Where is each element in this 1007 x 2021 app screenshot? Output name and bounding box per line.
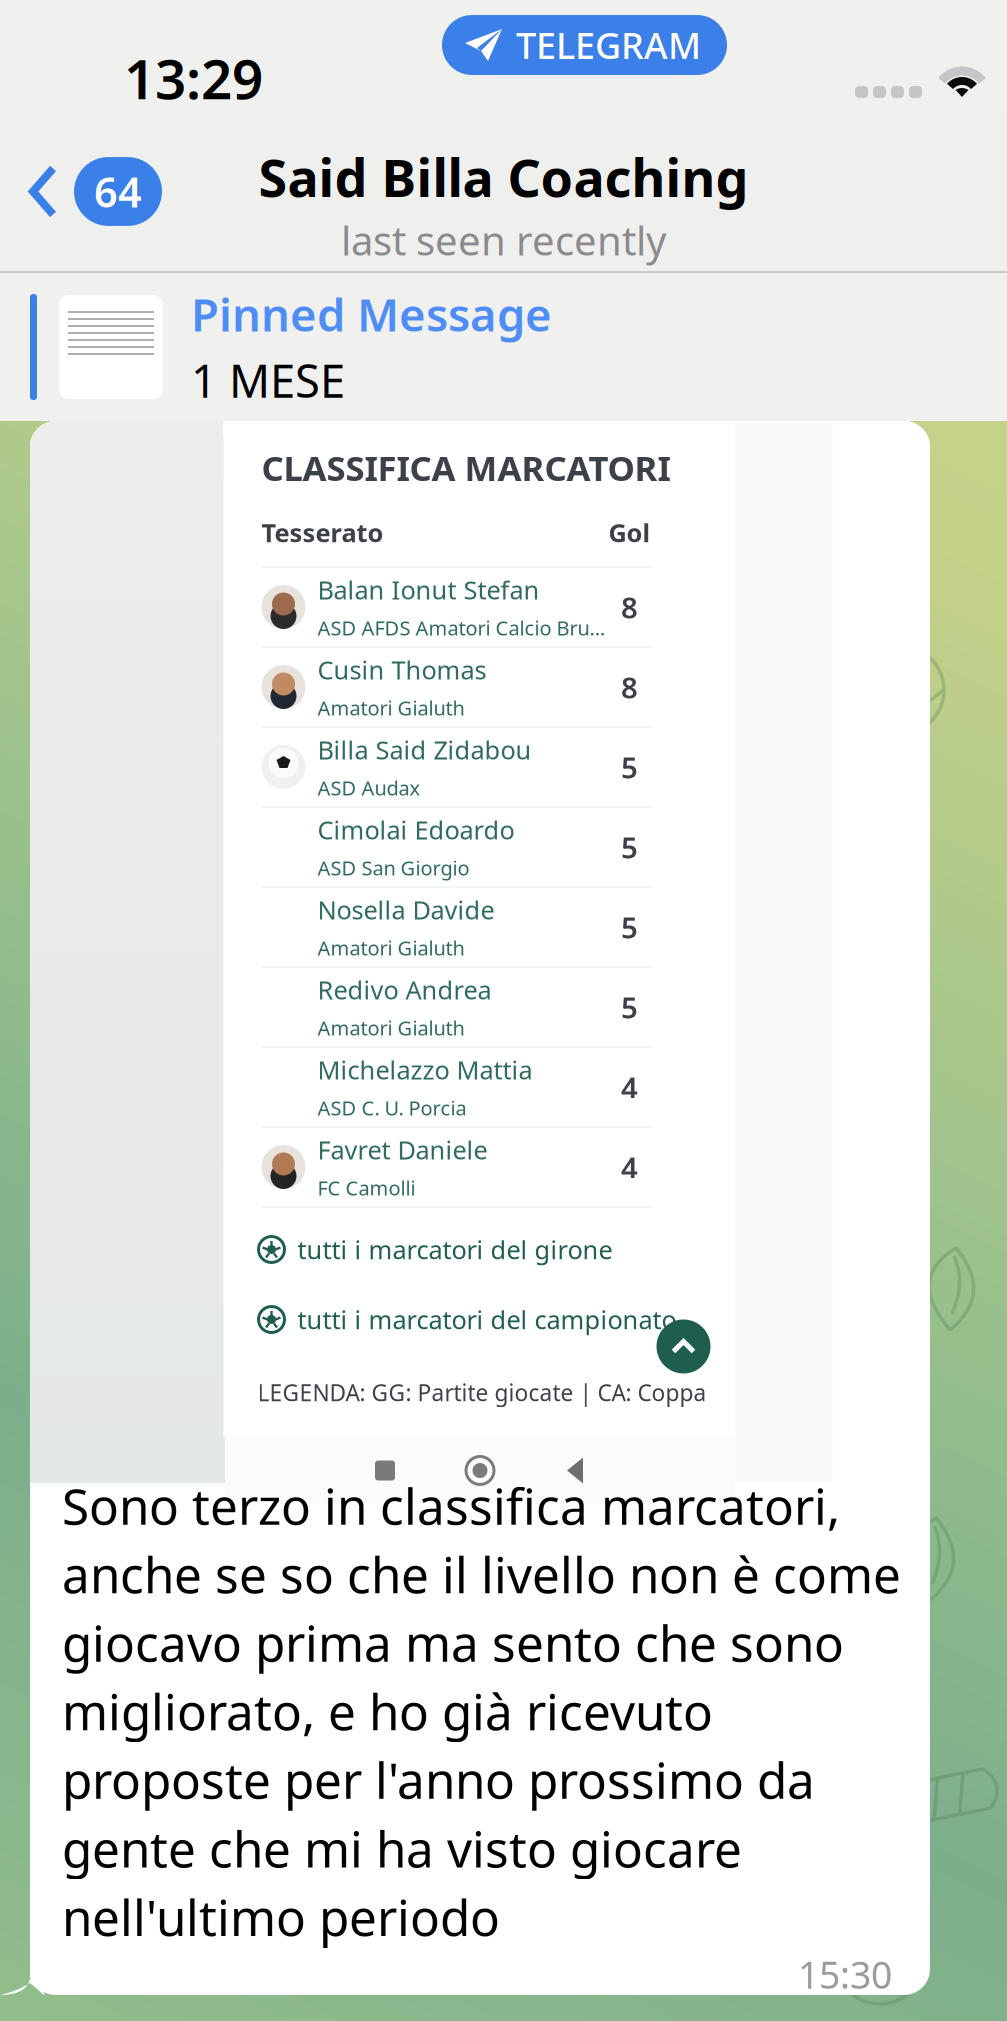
staticText: ASD C. U. Porcia (317, 1094, 466, 1121)
staticText: 13:29 (124, 42, 263, 114)
staticText: Cimolai Edoardo (317, 813, 514, 846)
staticText: 5 (621, 747, 638, 786)
staticText: ASD Audax (317, 774, 420, 801)
staticText: Cusin Thomas (317, 653, 486, 686)
staticText: tutti i marcatori del girone (297, 1233, 612, 1266)
button[interactable]: 64 (0, 137, 162, 246)
staticText: 4 (621, 1147, 638, 1186)
staticText: last seen recently (341, 213, 666, 267)
staticText: 8 (621, 667, 638, 706)
staticText: 64 (94, 164, 142, 219)
staticText: Pinned Message (191, 284, 552, 344)
staticText: Amatori Gialuth (317, 1014, 464, 1041)
staticText: Said Billa Coaching (258, 142, 748, 211)
staticText: ASD AFDS Amatori Calcio Brug… (317, 614, 607, 641)
staticText: 15:30 (798, 1949, 892, 1999)
button[interactable]: Pinned Message (0, 273, 1007, 421)
staticText: TELEGRAM (516, 21, 701, 69)
staticText: Billa Said Zidabou (317, 733, 531, 766)
staticText: 4 (621, 1067, 638, 1106)
staticText: Redivo Andrea (317, 973, 491, 1006)
staticText: Balan Ionut Stefan (317, 573, 539, 606)
staticText: 5 (621, 827, 638, 866)
staticText: CLASSIFICA MARCATORI (261, 444, 670, 490)
staticText: Michelazzo Mattia (317, 1053, 532, 1086)
staticText: LEGENDA: GG: Partite giocate | CA: Coppa (257, 1377, 706, 1407)
staticText: 5 (621, 907, 638, 946)
staticText: tutti i marcatori del campionato (297, 1303, 676, 1336)
staticText: FC Camolli (317, 1174, 415, 1201)
staticText: Tesserato (261, 516, 383, 549)
staticText: Sono terzo in classifica marcatori, anch… (62, 1473, 901, 1949)
staticText: 1 MESE (191, 350, 345, 410)
staticText: 8 (621, 587, 638, 626)
staticText: Nosella Davide (317, 893, 494, 926)
staticText: Amatori Gialuth (317, 694, 464, 721)
staticText: Favret Daniele (317, 1133, 487, 1166)
staticText: ASD San Giorgio (317, 854, 469, 881)
staticText: 5 (621, 987, 638, 1026)
staticText: Gol (608, 516, 650, 549)
staticText: Amatori Gialuth (317, 934, 464, 961)
